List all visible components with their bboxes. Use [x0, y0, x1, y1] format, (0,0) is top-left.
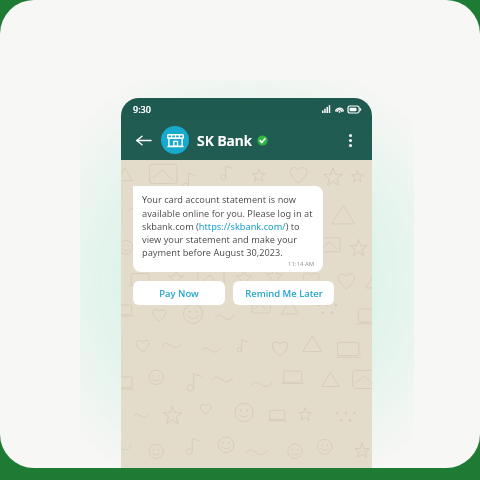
staticText: Pay Now — [159, 287, 199, 300]
staticText: 11:14 AM — [288, 260, 315, 268]
staticText: SK Bank — [197, 131, 252, 150]
button[interactable]: Pay Now — [133, 281, 225, 305]
staticText: 9:30 — [133, 103, 151, 115]
staticText: Remind Me Later — [245, 287, 323, 300]
staticText: Your card account statement is now avail… — [142, 193, 315, 258]
button[interactable]: Remind Me Later — [233, 281, 334, 305]
button[interactable]: Back — [132, 129, 154, 151]
button[interactable]: Your card account statement is now avail… — [133, 186, 323, 272]
button[interactable]: SK Bank profile — [161, 126, 189, 154]
button[interactable]: More options — [339, 129, 361, 151]
